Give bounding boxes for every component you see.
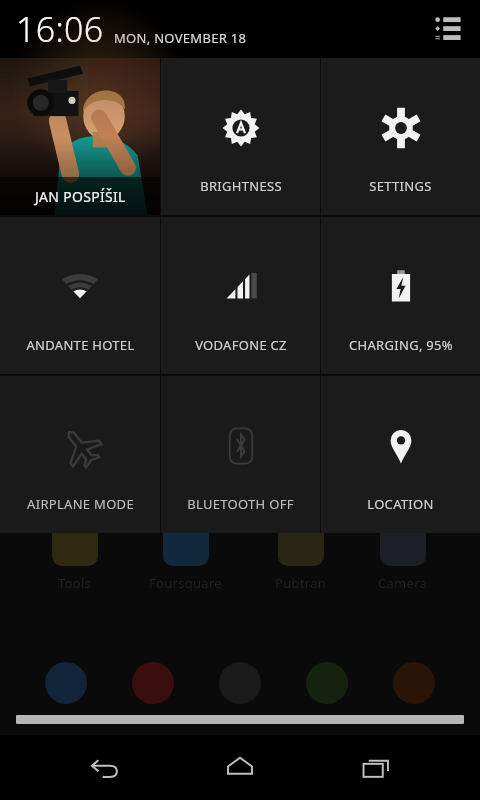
staticText: JAN POSPÍŠIL — [35, 187, 126, 206]
staticText: MON, NOVEMBER 18 — [114, 29, 247, 47]
button[interactable]: SETTINGS — [321, 58, 480, 215]
staticText: 16:06 — [16, 6, 104, 52]
staticText: VODAFONE CZ — [195, 336, 287, 354]
button[interactable]: ANDANTE HOTEL — [0, 217, 160, 374]
button[interactable]: CHARGING, 95% — [321, 217, 480, 374]
staticText: LOCATION — [367, 495, 434, 513]
button[interactable]: Notifications list — [430, 11, 466, 47]
staticText: Camera — [378, 574, 428, 592]
staticText: Foursquare — [149, 574, 223, 592]
staticText: AIRPLANE MODE — [27, 495, 134, 513]
staticText: SETTINGS — [369, 177, 432, 195]
button[interactable]: Recent apps — [344, 736, 408, 800]
staticText: Pubtran — [275, 574, 327, 592]
button[interactable]: Home — [208, 736, 272, 800]
button[interactable]: AIRPLANE MODE — [0, 376, 160, 533]
button[interactable]: Back — [72, 736, 136, 800]
staticText: BRIGHTNESS — [200, 177, 282, 195]
button[interactable]: VODAFONE CZ — [161, 217, 320, 374]
staticText: Tools — [58, 574, 92, 592]
staticText: BLUETOOTH OFF — [187, 495, 294, 513]
button[interactable]: BRIGHTNESS — [161, 58, 320, 215]
button[interactable]: BLUETOOTH OFF — [161, 376, 320, 533]
staticText: ANDANTE HOTEL — [26, 336, 135, 354]
button[interactable]: LOCATION — [321, 376, 480, 533]
button[interactable]: JAN POSPÍŠIL — [0, 58, 160, 215]
staticText: CHARGING, 95% — [349, 336, 453, 354]
